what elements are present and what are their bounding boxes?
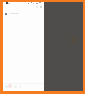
button[interactable]: Tab (18, 84, 22, 88)
button[interactable]: Search (35, 5, 38, 8)
button[interactable]: Tab (8, 84, 12, 88)
button[interactable]: More options (39, 5, 42, 8)
button[interactable]: Tab (4, 84, 8, 88)
button[interactable]: Tab (13, 84, 17, 88)
button[interactable] (3, 11, 44, 16)
